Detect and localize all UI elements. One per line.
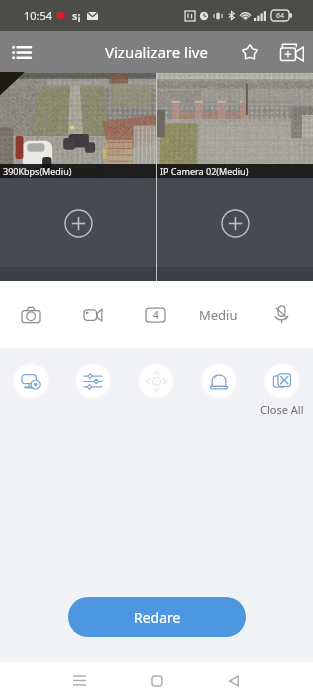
- button[interactable]: IP Camera 02(Mediu): [157, 73, 313, 178]
- staticText: Redare: [134, 608, 181, 627]
- staticText: s¡: [72, 8, 81, 23]
- button[interactable]: Alarm: [200, 362, 238, 400]
- staticText: Vizualizare live: [105, 42, 208, 62]
- button[interactable]: Favorite: [229, 31, 271, 73]
- button[interactable]: Image adjust: [74, 362, 112, 400]
- button[interactable]: Menu: [0, 31, 42, 73]
- button[interactable]: Home: [118, 662, 195, 699]
- button[interactable]: Stream settings: [12, 362, 50, 400]
- button[interactable]: Add window: [55, 200, 101, 246]
- button[interactable]: PTZ: [137, 362, 175, 400]
- button[interactable]: Close All: [263, 362, 301, 400]
- button[interactable]: Snapshot: [0, 281, 62, 348]
- staticText: 64: [276, 11, 285, 21]
- button[interactable]: Add camera: [271, 31, 313, 73]
- staticText: Mediu: [199, 306, 238, 324]
- button[interactable]: Layout 4: [124, 281, 187, 348]
- button[interactable]: Recents: [41, 662, 118, 699]
- button[interactable]: Mediu: [187, 281, 250, 348]
- staticText: 4: [153, 308, 159, 322]
- button[interactable]: Mute: [250, 281, 313, 348]
- staticText: 390Kbps(Mediu): [3, 165, 72, 177]
- button[interactable]: Back: [195, 662, 272, 699]
- button[interactable]: Record: [62, 281, 124, 348]
- button[interactable]: Add window: [212, 200, 258, 246]
- staticText: IP Camera 02(Mediu): [160, 165, 249, 177]
- staticText: Close All: [260, 402, 304, 417]
- staticText: 10:54: [24, 8, 53, 23]
- button[interactable]: Redare: [68, 597, 246, 637]
- button[interactable]: 390Kbps(Mediu): [0, 73, 156, 178]
